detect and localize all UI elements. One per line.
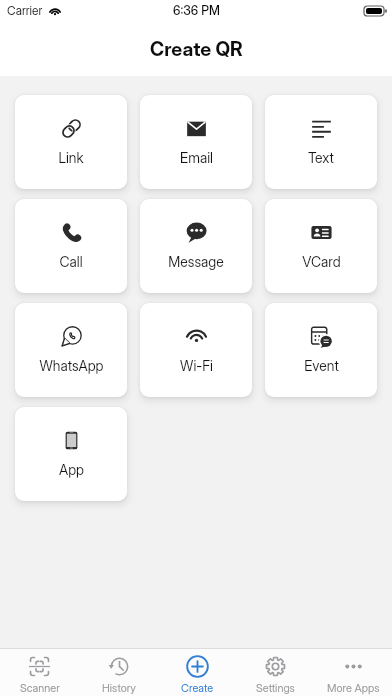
button[interactable]: Text <box>265 95 377 189</box>
staticText: App <box>59 461 84 478</box>
staticText: Link <box>58 149 84 166</box>
staticText: Scanner <box>20 681 60 694</box>
button[interactable]: App <box>15 407 127 501</box>
staticText: WhatsApp <box>39 357 104 374</box>
staticText: History <box>102 681 136 694</box>
button[interactable]: History <box>79 649 158 696</box>
staticText: More Apps <box>327 681 380 694</box>
staticText: Settings <box>256 681 295 694</box>
button[interactable]: Settings <box>236 649 314 696</box>
button[interactable]: Wi-Fi <box>140 303 252 397</box>
staticText: Call <box>59 253 83 270</box>
button[interactable]: Call <box>15 199 127 293</box>
button[interactable]: Email <box>140 95 252 189</box>
staticText: Wi-Fi <box>180 357 213 374</box>
staticText: VCard <box>302 253 341 270</box>
staticText: Create <box>181 681 214 694</box>
staticText: Carrier <box>7 3 43 18</box>
staticText: 6:36 PM <box>173 3 220 18</box>
staticText: Email <box>180 149 213 166</box>
button[interactable]: VCard <box>265 199 377 293</box>
button[interactable]: Scanner <box>0 649 79 696</box>
staticText: Event <box>304 357 339 374</box>
button[interactable]: WhatsApp <box>15 303 127 397</box>
button[interactable]: Link <box>15 95 127 189</box>
staticText: Create QR <box>150 37 243 61</box>
button[interactable]: Create <box>158 649 236 696</box>
staticText: Message <box>168 253 224 270</box>
button[interactable]: Message <box>140 199 252 293</box>
button[interactable]: More Apps <box>314 649 392 696</box>
button[interactable]: Event <box>265 303 377 397</box>
staticText: Text <box>308 149 334 166</box>
